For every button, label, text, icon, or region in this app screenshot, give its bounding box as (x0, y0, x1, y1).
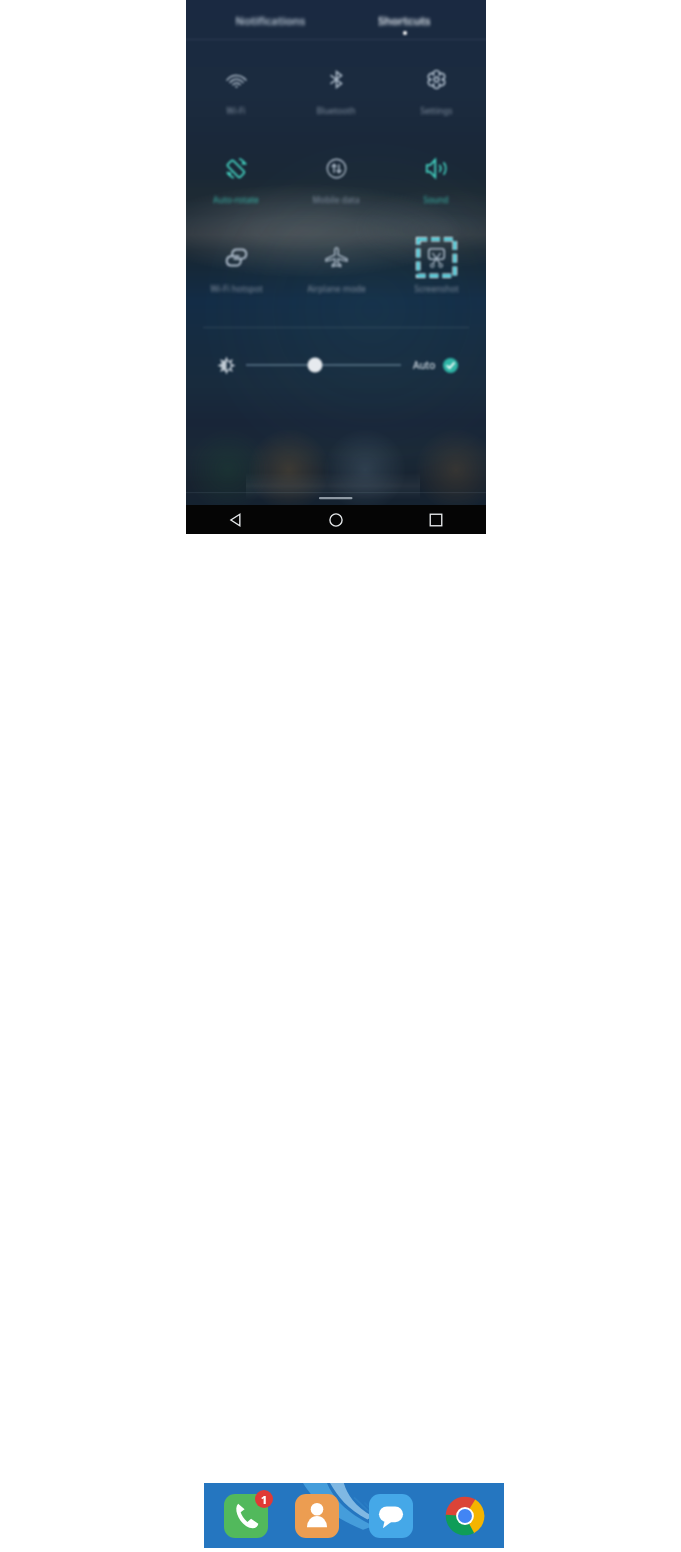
staticText: Bluetooth (316, 105, 356, 117)
staticText: Notifications (235, 13, 306, 29)
button[interactable]: Screenshot (386, 219, 486, 308)
staticText: Wi-Fi hotspot (210, 283, 263, 295)
button[interactable]: Wi-Fi hotspot (186, 219, 286, 308)
button[interactable]: Notifications (204, 0, 336, 39)
button[interactable]: Sound (386, 130, 486, 219)
staticText: Settings (420, 105, 453, 117)
staticText: Wi-Fi (226, 105, 246, 117)
button[interactable]: Bluetooth (286, 41, 386, 130)
staticText: Auto (413, 358, 436, 372)
button[interactable]: Home (286, 505, 386, 534)
button[interactable]: Auto brightness (443, 358, 458, 373)
button[interactable]: Back (186, 505, 286, 534)
button[interactable]: Phone (224, 1494, 268, 1538)
staticText: Sound (423, 194, 449, 206)
staticText: Shortcuts (378, 13, 431, 29)
button[interactable]: Shortcuts (338, 0, 470, 39)
button[interactable]: Wi-Fi (186, 41, 286, 130)
staticText: Airplane mode (307, 283, 366, 295)
button[interactable]: Mobile data (286, 130, 386, 219)
button[interactable] (246, 357, 401, 373)
button[interactable]: Airplane mode (286, 219, 386, 308)
staticText: Screenshot (414, 283, 459, 295)
button[interactable]: Recents (386, 505, 486, 534)
button[interactable]: Chrome (442, 1493, 488, 1539)
button[interactable]: Settings (386, 41, 486, 130)
staticText: Mobile data (312, 194, 360, 206)
button[interactable]: Contacts (295, 1494, 339, 1538)
staticText: Auto-rotate (213, 194, 259, 206)
button[interactable]: Auto-rotate (186, 130, 286, 219)
staticText: 1 (261, 1492, 268, 1507)
button[interactable]: Messages (369, 1494, 413, 1538)
